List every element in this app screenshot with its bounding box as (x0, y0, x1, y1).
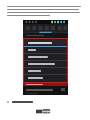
button[interactable] (24, 47, 67, 54)
button[interactable] (24, 54, 67, 61)
button[interactable] (24, 68, 67, 75)
button[interactable] (24, 75, 67, 81)
button[interactable] (24, 39, 67, 47)
button[interactable] (7, 101, 83, 103)
button[interactable]: More (61, 88, 65, 91)
button[interactable]: More (23, 20, 68, 95)
button[interactable] (24, 61, 67, 68)
other: Logo (36, 107, 51, 116)
